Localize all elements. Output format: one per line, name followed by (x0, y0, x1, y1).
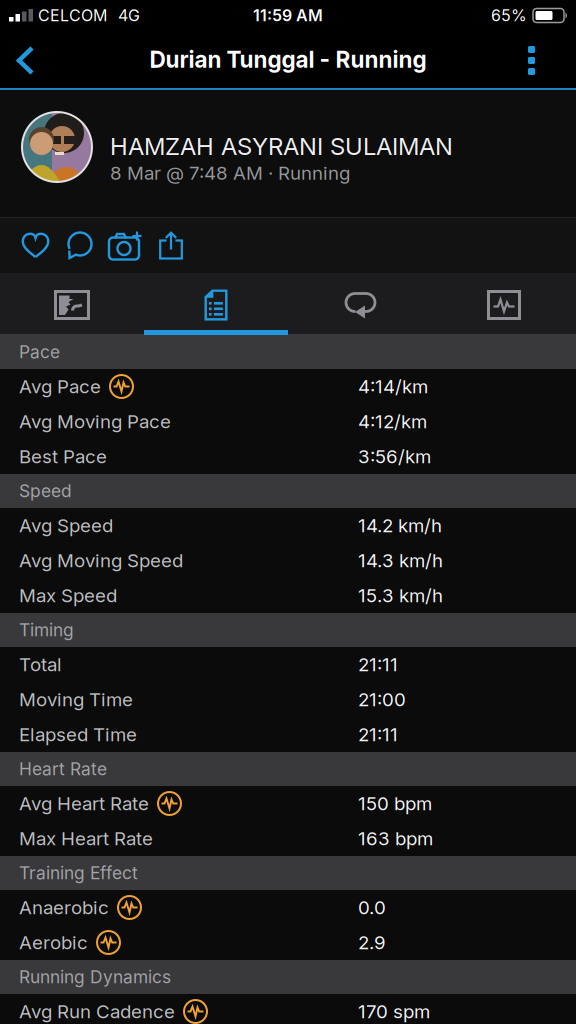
staticText: Elapsed Time (19, 723, 137, 745)
button[interactable]: More options (528, 44, 576, 75)
button[interactable]: Map (0, 277, 144, 333)
staticText: Durian Tunggal - Running (149, 46, 426, 73)
button[interactable]: Stats (144, 277, 288, 333)
staticText: 21:11 (358, 653, 398, 675)
staticText: Avg Moving Speed (19, 549, 183, 571)
staticText: Max Heart Rate (19, 827, 153, 849)
staticText: Heart Rate (19, 759, 107, 779)
staticText: Pace (19, 342, 60, 362)
staticText: 4G (118, 6, 140, 25)
staticText: 150 bpm (358, 792, 432, 814)
button[interactable]: Back (0, 44, 34, 74)
button[interactable]: Share (142, 231, 183, 259)
staticText: HAMZAH ASYRANI SULAIMAN (110, 132, 453, 160)
button[interactable]: Comment (49, 232, 94, 259)
staticText: 4:14/km (358, 375, 428, 397)
staticText: Timing (19, 620, 74, 640)
staticText: 163 bpm (358, 827, 433, 849)
staticText: Max Speed (19, 584, 117, 606)
staticText: Total (19, 653, 62, 675)
staticText: Moving Time (19, 688, 133, 710)
staticText: Avg Pace (19, 375, 101, 397)
staticText: 15.3 km/h (358, 584, 443, 606)
staticText: Aerobic (19, 931, 88, 953)
staticText: Speed (19, 481, 72, 501)
staticText: Avg Run Cadence (19, 1000, 175, 1022)
staticText: Training Effect (19, 863, 138, 883)
staticText: 21:11 (358, 723, 398, 745)
staticText: 8 Mar @ 7:48 AM · Running (110, 162, 350, 184)
staticText: 65% (491, 6, 527, 25)
staticText: 4:12/km (358, 410, 427, 432)
staticText: Avg Heart Rate (19, 792, 149, 814)
button[interactable]: Add photo (94, 231, 142, 259)
button[interactable]: Laps (288, 277, 432, 333)
button[interactable]: Like (0, 233, 49, 258)
staticText: 3:56/km (358, 445, 431, 467)
staticText: 21:00 (358, 688, 406, 710)
staticText: 0.0 (358, 896, 386, 918)
staticText: Avg Speed (19, 514, 113, 536)
staticText: 14.2 km/h (358, 514, 442, 536)
staticText: 2.9 (358, 931, 386, 953)
staticText: Best Pace (19, 445, 107, 467)
staticText: Anaerobic (19, 896, 109, 918)
staticText: 11:59 AM (253, 6, 323, 25)
staticText: 14.3 km/h (358, 549, 443, 571)
staticText: Avg Moving Pace (19, 410, 171, 432)
staticText: Running Dynamics (19, 967, 171, 987)
button[interactable]: Charts (432, 277, 576, 333)
staticText: 170 spm (358, 1000, 430, 1022)
staticText: CELCOM (38, 6, 107, 25)
